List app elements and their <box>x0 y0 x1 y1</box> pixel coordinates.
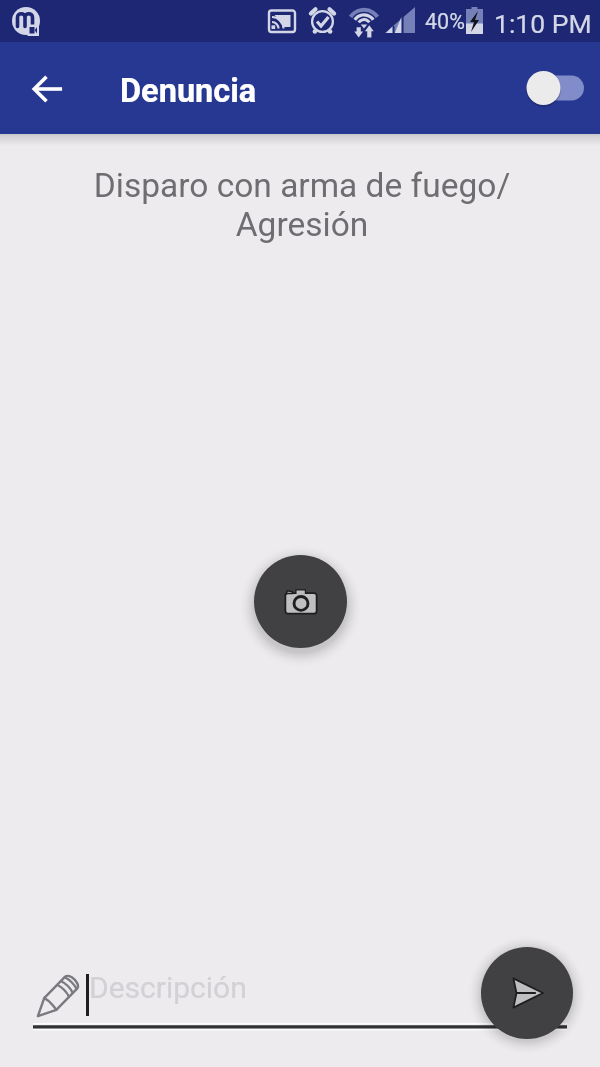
staticText: 1:10 PM <box>494 8 592 39</box>
button[interactable]: Interruptor <box>516 63 592 113</box>
button[interactable]: Enviar <box>481 947 573 1039</box>
button[interactable]: Atrás <box>24 65 72 113</box>
staticText: 40% <box>425 9 465 34</box>
staticText: Disparo con arma de fuego/ Agresión <box>2 166 600 244</box>
staticText: Descripción <box>89 970 247 1005</box>
staticText: Denuncia <box>120 72 257 110</box>
button[interactable]: Tomar foto <box>254 555 347 648</box>
button[interactable]: Descripción <box>33 962 473 1026</box>
